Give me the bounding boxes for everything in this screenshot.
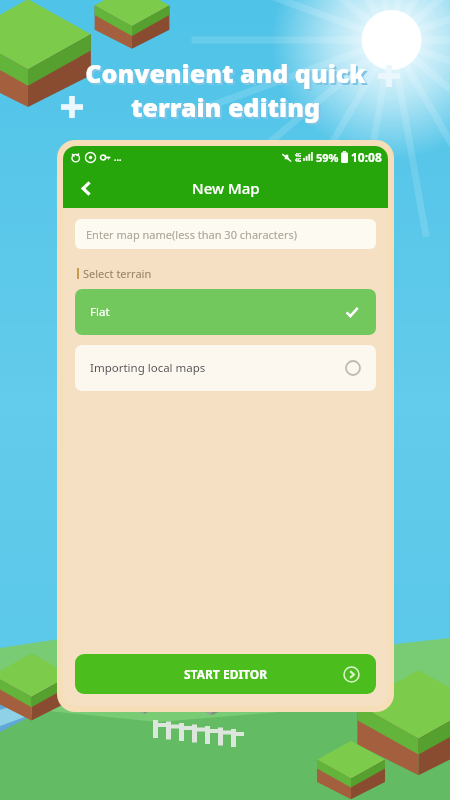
button[interactable]: START EDITOR [75, 654, 376, 694]
button[interactable]: Importing local maps [75, 345, 376, 391]
button[interactable]: Back [69, 171, 103, 205]
button[interactable]: Flat [75, 289, 376, 335]
staticText: START EDITOR [184, 666, 268, 682]
staticText: Importing local maps [90, 360, 206, 376]
staticText: Enter map name(less than 30 characters) [86, 227, 298, 242]
staticText: Convenient and quick [87, 58, 368, 92]
staticText: New Map [192, 178, 260, 198]
staticText: terrain editing [133, 92, 322, 126]
staticText: 10:08 [351, 149, 382, 165]
staticText: terrain editing [131, 90, 320, 124]
staticText: ... [114, 151, 122, 163]
staticText: 59% [316, 150, 339, 165]
button[interactable]: Enter map name(less than 30 characters) [75, 219, 376, 249]
staticText: Select terrain [83, 266, 152, 281]
staticText: Flat [90, 304, 110, 320]
staticText: Convenient and quick [85, 56, 366, 90]
staticText: 4G 4G [295, 152, 302, 163]
